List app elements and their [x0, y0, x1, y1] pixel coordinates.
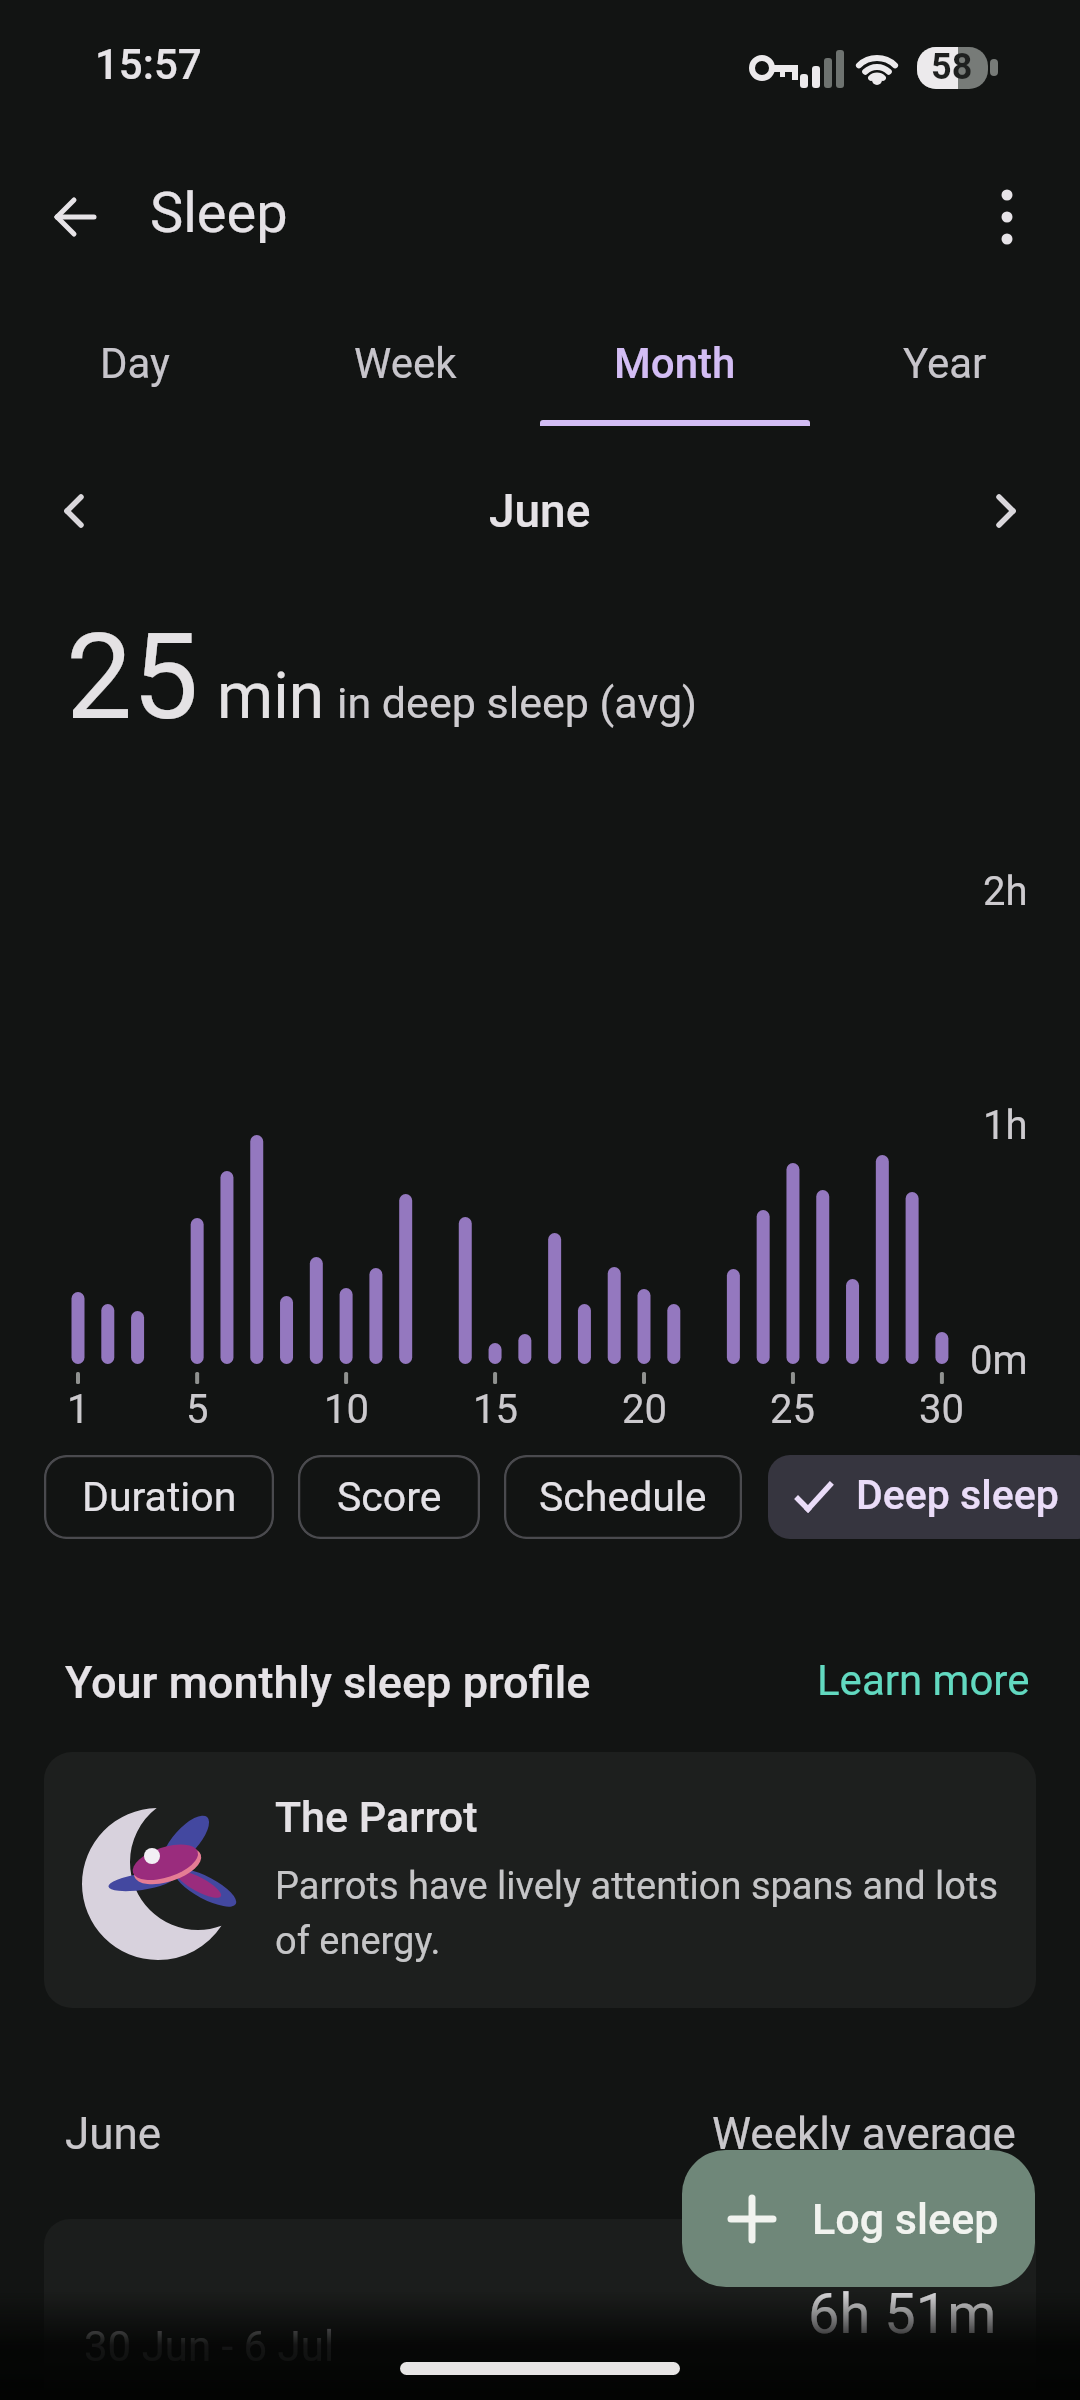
staticText: 25: [66, 609, 199, 747]
staticText: Year: [903, 339, 987, 388]
staticText: Your monthly sleep profile: [65, 1656, 591, 1709]
staticText: 15:57: [95, 40, 202, 89]
staticText: The Parrot: [275, 1792, 478, 1842]
staticText: 10: [324, 1386, 369, 1433]
staticText: Learn more: [817, 1656, 1030, 1705]
staticText: 1h: [983, 1102, 1028, 1149]
button[interactable]: Month: [540, 313, 810, 413]
staticText: Schedule: [539, 1473, 707, 1521]
staticText: 30: [919, 1386, 964, 1433]
staticText: in deep sleep (avg): [337, 678, 698, 728]
button[interactable]: Year: [810, 313, 1080, 413]
staticText: 58: [931, 46, 973, 88]
staticText: June: [65, 2108, 162, 2160]
staticText: 1: [67, 1386, 90, 1433]
staticText: Duration: [82, 1473, 237, 1521]
staticText: 6h 51m: [808, 2281, 997, 2347]
button[interactable]: 30 Jun - 6 Jul: [44, 2219, 1036, 2400]
button[interactable]: Deep sleep: [768, 1455, 1080, 1539]
staticText: Deep sleep: [856, 1471, 1059, 1519]
button[interactable]: [972, 478, 1038, 544]
button[interactable]: Score: [298, 1455, 480, 1539]
button[interactable]: Log sleep: [682, 2150, 1035, 2287]
button[interactable]: [42, 478, 108, 544]
staticText: 0m: [970, 1337, 1028, 1384]
staticText: Parrots have lively attention spans and …: [275, 1864, 999, 1909]
staticText: Month: [614, 339, 736, 388]
staticText: 5: [186, 1386, 209, 1433]
staticText: 25: [770, 1386, 815, 1433]
staticText: Week: [354, 339, 457, 388]
staticText: Score: [337, 1473, 442, 1521]
button[interactable]: Week: [270, 313, 540, 413]
button[interactable]: The Parrot: [44, 1752, 1036, 2008]
button[interactable]: Day: [0, 313, 270, 413]
staticText: 15: [473, 1386, 518, 1433]
button[interactable]: Learn more: [780, 1650, 1030, 1710]
staticText: Weekly average: [712, 2108, 1016, 2160]
staticText: Log sleep: [812, 2194, 999, 2244]
staticText: of energy.: [275, 1919, 441, 1964]
staticText: 30 Jun - 6 Jul: [84, 2322, 335, 2371]
staticText: Day: [100, 339, 170, 388]
staticText: Sleep: [150, 180, 288, 246]
staticText: June: [489, 484, 591, 538]
staticText: min: [217, 659, 325, 734]
button[interactable]: Schedule: [504, 1455, 742, 1539]
button[interactable]: [40, 182, 110, 252]
button[interactable]: [975, 185, 1039, 249]
staticText: 2h: [983, 868, 1028, 915]
button[interactable]: Duration: [44, 1455, 274, 1539]
staticText: 20: [622, 1386, 667, 1433]
